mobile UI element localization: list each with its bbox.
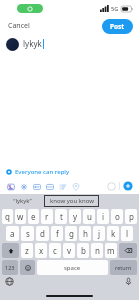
- staticText: t: [60, 211, 63, 222]
- button[interactable]: Add photo: [4, 180, 17, 193]
- staticText: Everyone can reply: [15, 168, 70, 176]
- staticText: lykyk: [23, 38, 42, 49]
- button[interactable]: d: [36, 226, 49, 241]
- button[interactable]: Post: [102, 19, 133, 34]
- button[interactable]: m: [105, 243, 117, 258]
- button[interactable]: Cancel: [5, 19, 33, 33]
- staticText: 123: [5, 264, 15, 271]
- staticText: c: [53, 245, 57, 256]
- button[interactable]: f: [51, 226, 63, 241]
- staticText: g: [69, 228, 74, 239]
- button[interactable]: a: [6, 226, 19, 241]
- button[interactable]: Character count: [107, 182, 116, 191]
- button[interactable]: i: [97, 209, 109, 224]
- button[interactable]: Change keyboard: [5, 277, 14, 286]
- staticText: b: [81, 245, 86, 256]
- staticText: q: [5, 211, 10, 222]
- button[interactable]: l: [121, 226, 133, 241]
- staticText: space: [64, 264, 81, 272]
- button[interactable]: Shift: [2, 243, 19, 258]
- button[interactable]: g: [65, 226, 77, 241]
- staticText: z: [25, 245, 29, 256]
- staticText: k: [111, 228, 116, 239]
- staticText: p: [129, 211, 134, 222]
- button[interactable]: t: [55, 209, 67, 224]
- staticText: s: [26, 228, 30, 239]
- staticText: 5G: [111, 5, 119, 12]
- staticText: y: [73, 211, 78, 222]
- button[interactable]: q: [2, 209, 13, 224]
- button[interactable]: Delete: [119, 243, 137, 258]
- button[interactable]: n: [91, 243, 103, 258]
- button[interactable]: Everyone can reply: [0, 166, 139, 178]
- staticText: Post: [110, 22, 125, 31]
- staticText: x: [39, 245, 44, 256]
- button[interactable]: Add another post: [123, 181, 133, 191]
- button[interactable]: e: [28, 209, 39, 224]
- button[interactable]: p: [125, 209, 137, 224]
- staticText: r: [45, 211, 49, 222]
- staticText: return: [115, 264, 132, 271]
- button[interactable]: s: [21, 226, 34, 241]
- button[interactable]: Add poll: [43, 180, 56, 193]
- button[interactable]: w: [15, 209, 26, 224]
- staticText: “lykyk”: [13, 197, 32, 205]
- staticText: u: [87, 211, 92, 222]
- button[interactable]: c: [49, 243, 61, 258]
- button[interactable]: Dictation: [124, 277, 133, 286]
- staticText: f: [56, 228, 59, 239]
- button[interactable]: k: [107, 226, 119, 241]
- button[interactable]: 123: [2, 260, 18, 275]
- button[interactable]: Emoji: [20, 260, 35, 275]
- button[interactable]: Profile photo: [6, 38, 19, 51]
- button[interactable]: return: [110, 260, 137, 275]
- button[interactable]: h: [79, 226, 91, 241]
- button[interactable]: x: [35, 243, 47, 258]
- staticText: know you know: [50, 197, 94, 205]
- button[interactable]: know you know: [44, 195, 99, 207]
- button[interactable]: u: [83, 209, 95, 224]
- button[interactable]: r: [41, 209, 53, 224]
- staticText: Cancel: [8, 21, 30, 31]
- staticText: o: [115, 211, 120, 222]
- staticText: d: [40, 228, 45, 239]
- staticText: j: [98, 228, 101, 239]
- button[interactable]: Add GIF: [17, 180, 30, 193]
- button[interactable]: Add location: [69, 180, 82, 193]
- button[interactable]: space: [37, 260, 108, 275]
- staticText: i: [102, 211, 105, 222]
- staticText: v: [67, 245, 72, 256]
- button[interactable]: v: [63, 243, 75, 258]
- button[interactable]: z: [21, 243, 33, 258]
- button[interactable]: j: [93, 226, 105, 241]
- staticText: a: [10, 228, 15, 239]
- button[interactable]: y: [69, 209, 81, 224]
- staticText: w: [17, 211, 24, 222]
- staticText: e: [31, 211, 36, 222]
- staticText: m: [107, 245, 115, 256]
- staticText: l: [126, 228, 129, 239]
- staticText: h: [83, 228, 88, 239]
- button[interactable]: o: [111, 209, 123, 224]
- button[interactable]: “lykyk”: [0, 194, 44, 208]
- button[interactable]: Schedule list: [56, 180, 69, 193]
- button[interactable]: Add card: [30, 180, 43, 193]
- staticText: n: [95, 245, 100, 256]
- button[interactable]: b: [77, 243, 89, 258]
